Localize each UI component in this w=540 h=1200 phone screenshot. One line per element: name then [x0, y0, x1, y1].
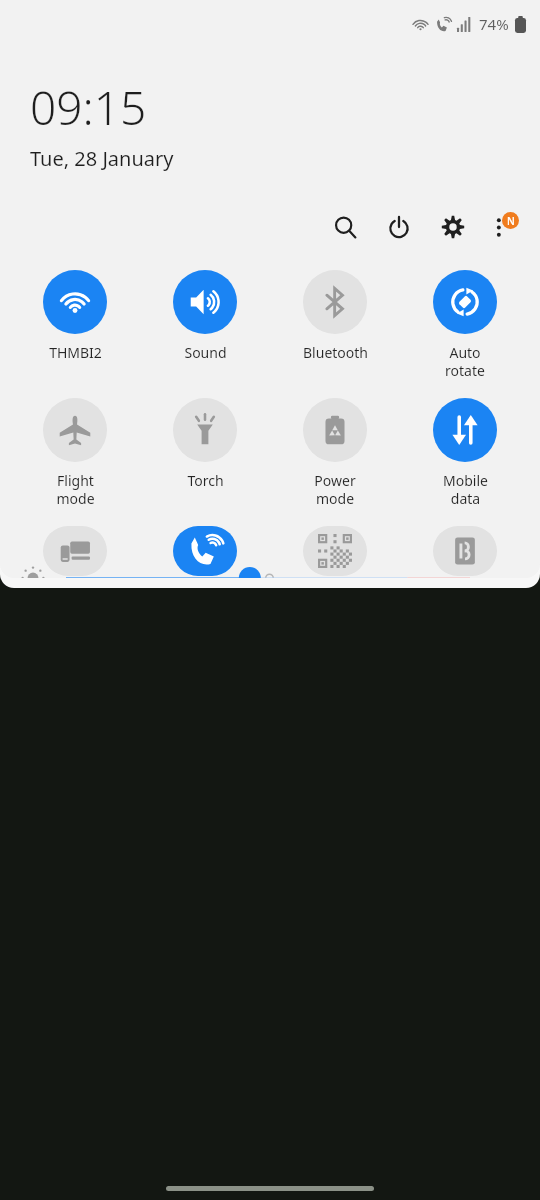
staticText: Mobile data	[443, 471, 488, 508]
staticText: 09:15	[30, 76, 147, 139]
staticText: Tue, 28 January	[30, 145, 174, 172]
button[interactable]: Settings	[430, 204, 476, 250]
button[interactable]: Link to Windows	[10, 524, 140, 578]
button[interactable]: Search	[322, 204, 368, 250]
button[interactable]: Power mode	[270, 396, 400, 510]
staticText: N	[507, 214, 515, 228]
button[interactable]: Mobile data	[400, 396, 530, 510]
button[interactable]: Power off	[376, 204, 422, 250]
button[interactable]: Scan QR code	[270, 524, 400, 578]
button[interactable]: Blue light filter	[400, 524, 530, 578]
button[interactable]: THMBI2	[10, 268, 140, 364]
button[interactable]: Flight mode	[10, 396, 140, 510]
staticText: Flight mode	[56, 471, 95, 508]
button[interactable]: Bluetooth	[270, 268, 400, 364]
staticText: Torch	[187, 471, 224, 490]
button[interactable]: Wi-Fi Calling	[140, 524, 270, 578]
button[interactable]: Torch	[140, 396, 270, 492]
button[interactable]: Sound	[140, 268, 270, 364]
staticText: Sound	[184, 343, 227, 362]
staticText: Auto rotate	[445, 343, 485, 380]
staticText: Bluetooth	[303, 343, 368, 362]
button[interactable]: More options	[480, 204, 526, 250]
staticText: 74%	[479, 14, 509, 34]
staticText: Power mode	[314, 471, 356, 508]
button[interactable]: Auto rotate	[400, 268, 530, 382]
staticText: THMBI2	[49, 343, 102, 362]
